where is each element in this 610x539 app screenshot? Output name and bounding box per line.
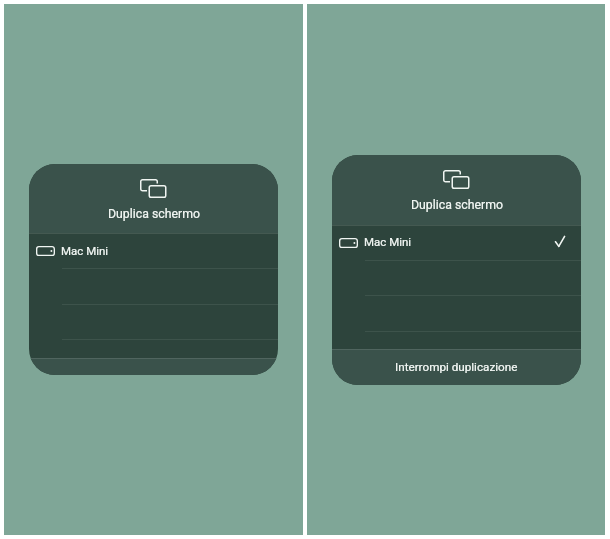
button[interactable] xyxy=(332,260,581,296)
button[interactable] xyxy=(332,331,581,349)
staticText: Duplica schermo xyxy=(411,198,503,212)
staticText: Mac Mini xyxy=(364,235,412,248)
button[interactable]: Interrompi duplicazione xyxy=(332,349,581,385)
staticText: Interrompi duplicazione xyxy=(395,360,518,374)
button[interactable] xyxy=(29,358,278,375)
staticText: Mac Mini xyxy=(61,244,109,257)
button[interactable]: Mac Mini xyxy=(332,225,581,260)
button[interactable] xyxy=(29,339,278,358)
button[interactable] xyxy=(29,304,278,340)
other: Selected xyxy=(555,236,565,247)
button[interactable]: Mac Mini xyxy=(29,233,278,269)
staticText: Duplica schermo xyxy=(108,207,200,221)
